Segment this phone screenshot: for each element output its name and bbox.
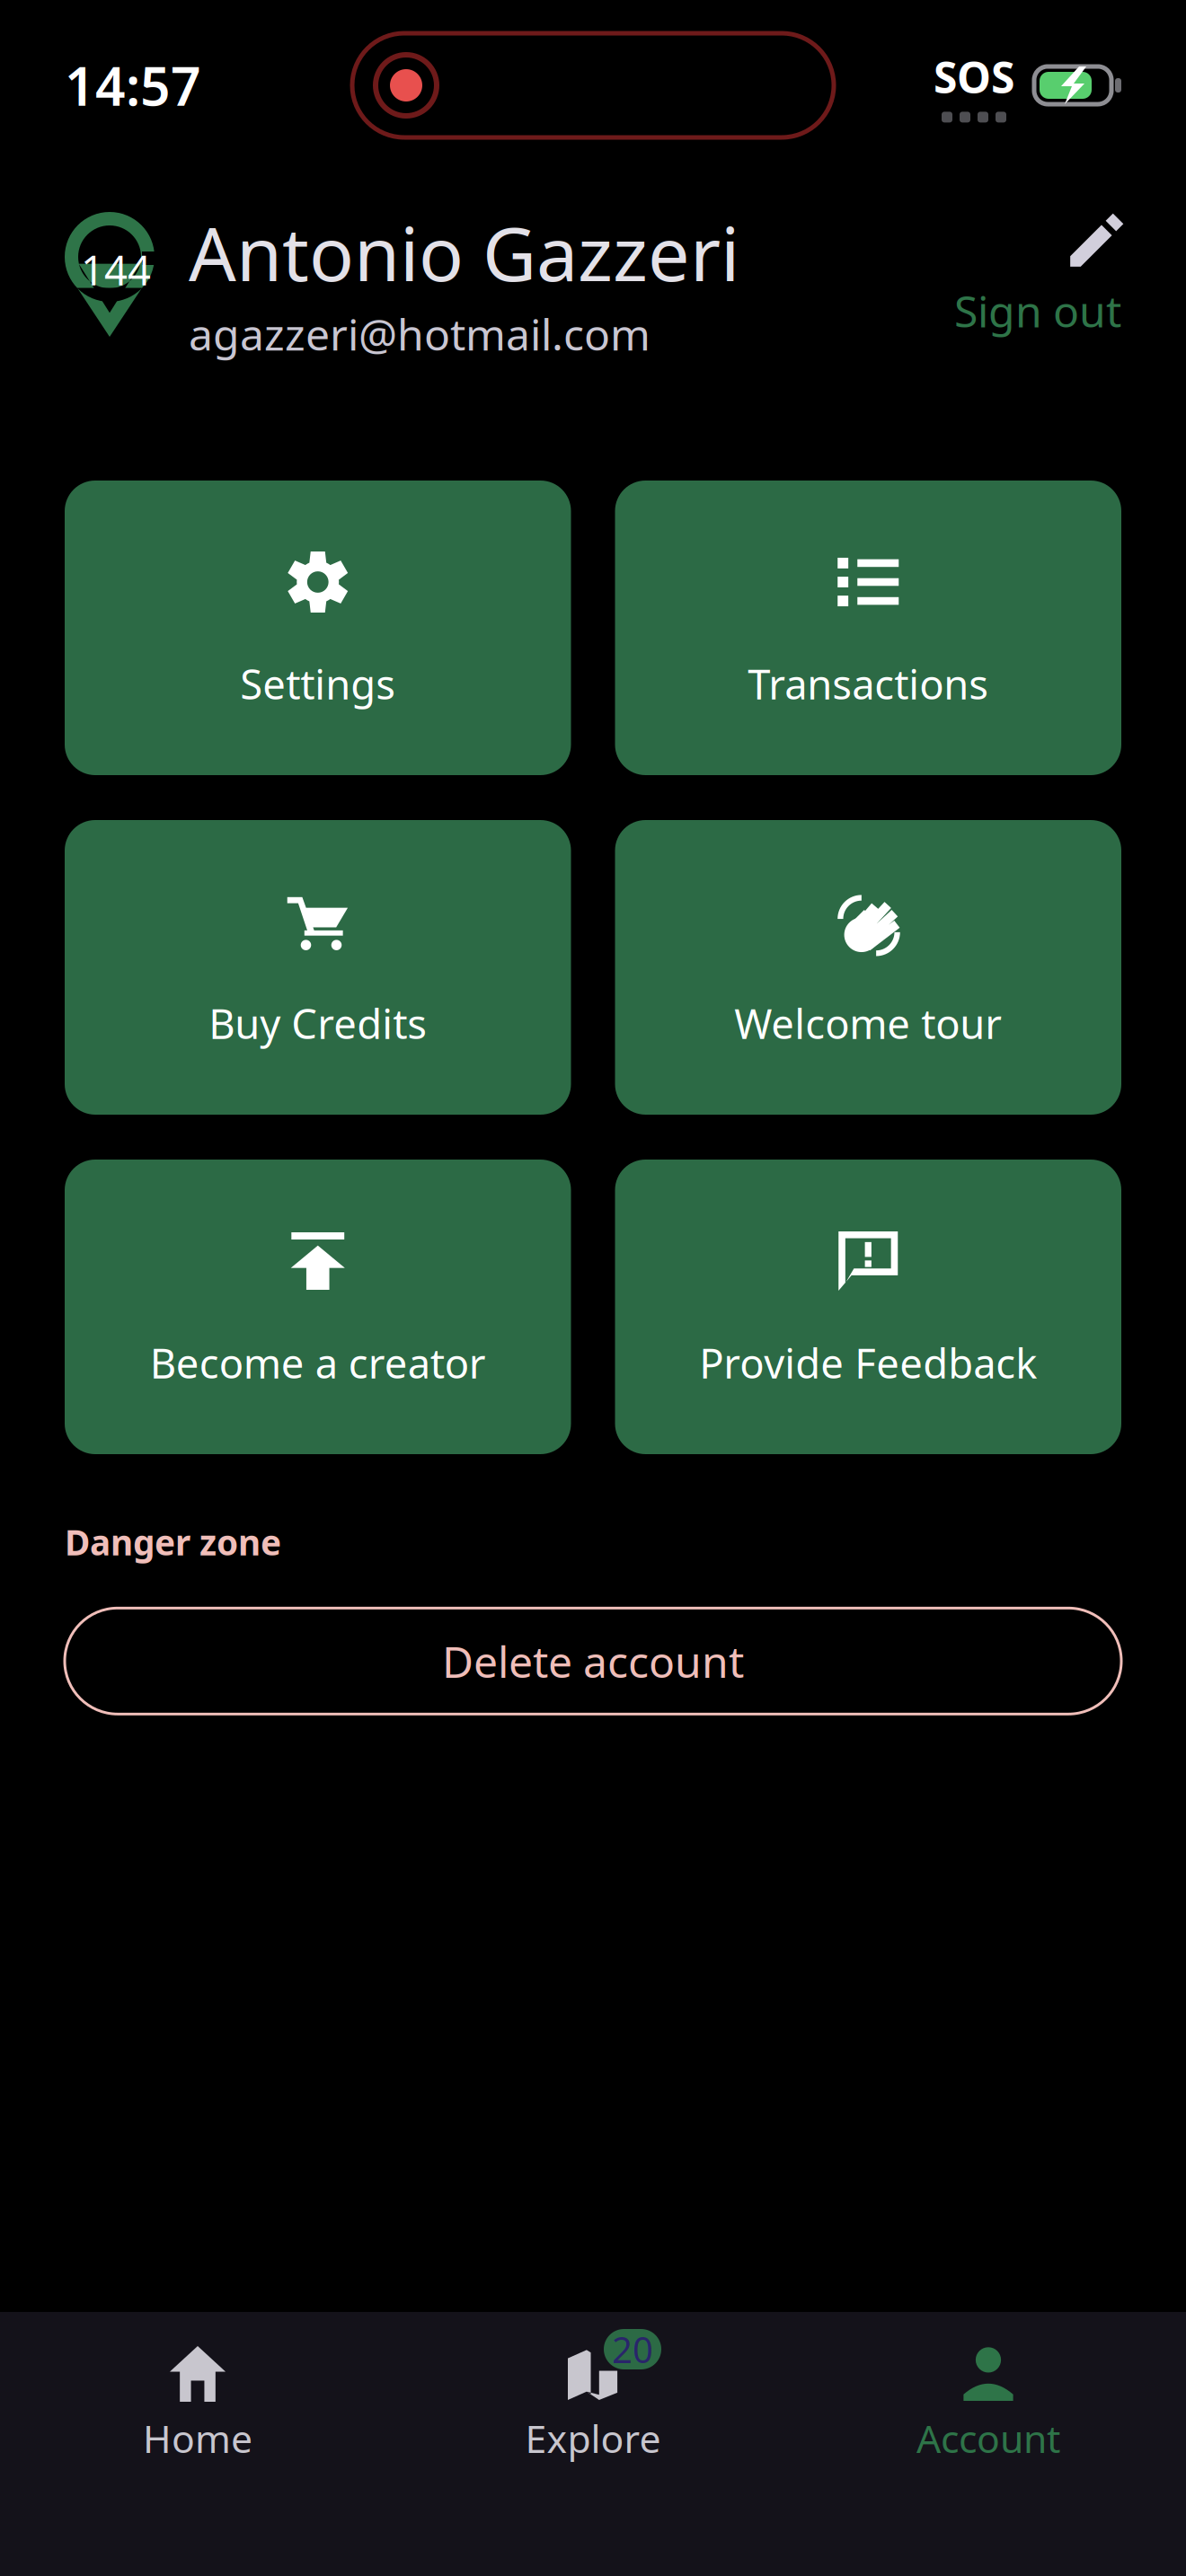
staticText: 14:57 <box>65 50 201 120</box>
staticText: Danger zone <box>65 1519 281 1565</box>
button[interactable]: Delete account <box>65 1608 1121 1714</box>
button[interactable]: 20 <box>395 2346 791 2463</box>
staticText: Home <box>143 2413 252 2463</box>
staticText: Account <box>916 2413 1060 2463</box>
staticText: agazzeri@hotmail.com <box>189 305 651 362</box>
staticText: Settings <box>240 657 396 711</box>
button[interactable]: Buy Credits <box>65 820 571 1115</box>
button[interactable]: Transactions <box>615 481 1121 775</box>
staticText: Welcome tour <box>734 996 1002 1050</box>
staticText: Explore <box>525 2413 661 2463</box>
staticText: Become a creator <box>150 1336 486 1390</box>
staticText: Antonio Gazzeri <box>189 203 739 302</box>
staticText: 144 <box>81 243 151 297</box>
staticText: Buy Credits <box>209 996 427 1050</box>
staticText: Provide Feedback <box>699 1336 1037 1390</box>
staticText: Delete account <box>442 1632 744 1690</box>
staticText: Transactions <box>748 657 989 711</box>
staticText: 20 <box>612 2325 653 2373</box>
staticText: SOS <box>934 48 1014 105</box>
button[interactable]: Edit profile <box>1069 216 1121 268</box>
button[interactable]: Provide Feedback <box>615 1160 1121 1454</box>
button[interactable]: Become a creator <box>65 1160 571 1454</box>
button[interactable]: Home <box>0 2346 395 2463</box>
button[interactable]: Account <box>791 2346 1186 2463</box>
button[interactable]: Settings <box>65 481 571 775</box>
button[interactable]: Sign out <box>954 282 1121 339</box>
button[interactable]: Welcome tour <box>615 820 1121 1115</box>
staticText: Sign out <box>954 282 1121 339</box>
